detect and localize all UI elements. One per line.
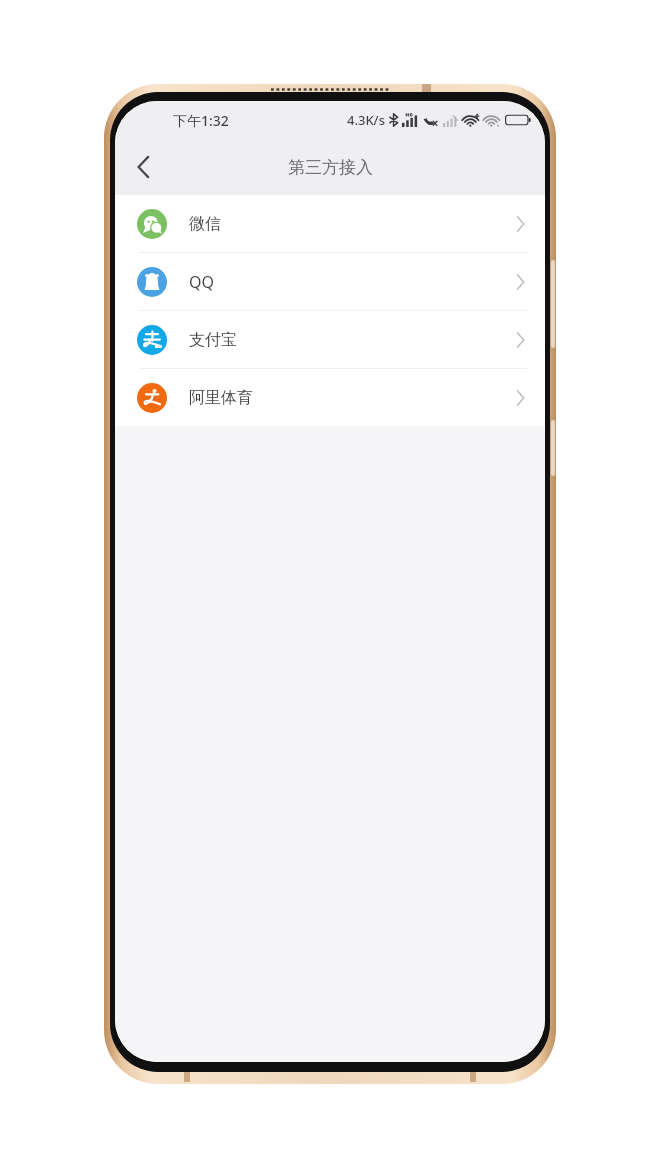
staticText: 支付宝 xyxy=(189,330,237,350)
staticText: QQ xyxy=(189,271,214,293)
button[interactable]: Back xyxy=(115,139,171,195)
staticText: 第三方接入 xyxy=(288,157,373,178)
staticText: 阿里体育 xyxy=(189,388,253,408)
button[interactable]: 阿里体育 xyxy=(115,369,545,426)
staticText: 下午1:32 xyxy=(173,111,229,130)
button[interactable]: 支付宝 xyxy=(115,311,545,368)
button[interactable]: QQ xyxy=(115,253,545,310)
staticText: 4.3K/s xyxy=(347,111,385,129)
button[interactable]: 微信 xyxy=(115,195,545,252)
staticText: 微信 xyxy=(189,214,221,234)
